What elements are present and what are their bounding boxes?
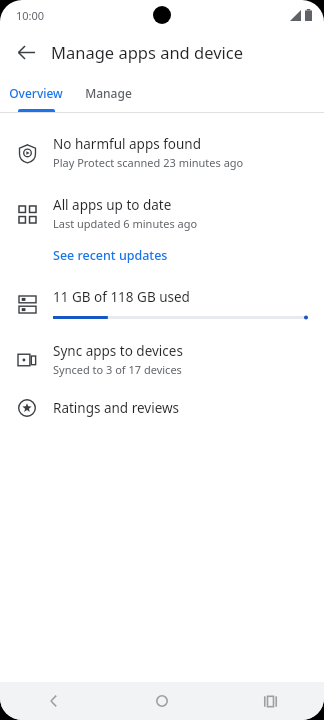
staticText: 11 GB of 118 GB used [53, 288, 190, 306]
staticText: See recent updates [53, 247, 168, 264]
staticText: Play Protect scanned 23 minutes ago [53, 155, 244, 170]
button[interactable]: 11 GB of 118 GB used [0, 288, 324, 320]
button[interactable]: Ratings and reviews [0, 393, 324, 423]
button[interactable]: See recent updates [0, 235, 324, 272]
staticText: Sync apps to devices [53, 342, 183, 360]
staticText: Manage apps and device [51, 41, 244, 63]
button[interactable]: Back [8, 34, 44, 70]
staticText: No harmful apps found [53, 135, 201, 153]
button[interactable]: Home [108, 682, 216, 720]
button[interactable]: Manage [72, 74, 144, 112]
staticText: All apps up to date [53, 196, 172, 214]
button[interactable]: Back [0, 682, 108, 720]
staticText: 10:00 [16, 8, 45, 23]
button[interactable]: All apps up to date [0, 192, 324, 235]
staticText: Last updated 6 minutes ago [53, 216, 198, 231]
staticText: Synced to 3 of 17 devices [53, 362, 182, 377]
staticText: Ratings and reviews [53, 399, 180, 417]
staticText: Overview [9, 85, 63, 101]
button[interactable]: Overview [0, 74, 72, 112]
staticText: Manage [85, 85, 132, 101]
button[interactable]: Sync apps to devices [0, 338, 324, 381]
button[interactable]: Recents [216, 682, 324, 720]
button[interactable]: No harmful apps found [0, 131, 324, 174]
